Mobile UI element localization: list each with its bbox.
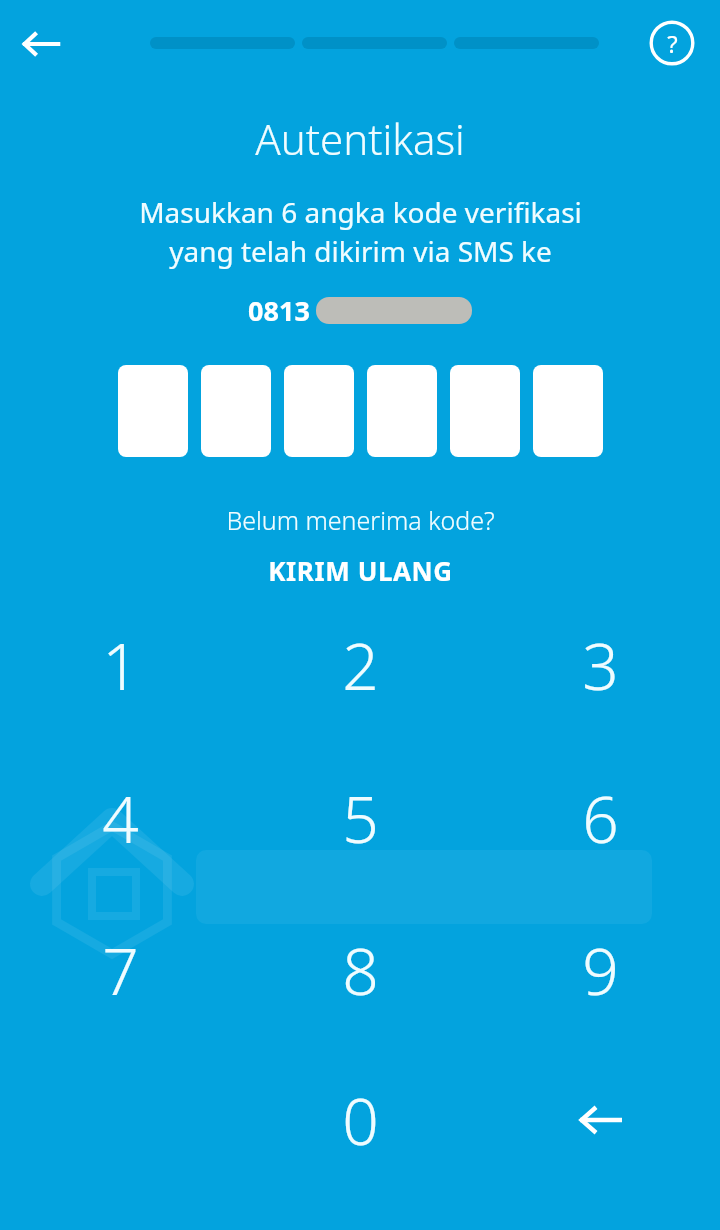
staticText: 4 xyxy=(102,775,139,862)
button[interactable]: Digit 4 xyxy=(367,365,437,457)
button[interactable]: 5 xyxy=(290,758,430,878)
staticText: Autentikasi xyxy=(255,110,465,167)
staticText: 7 xyxy=(102,927,139,1014)
button[interactable]: 1 xyxy=(50,605,190,725)
button[interactable]: KIRIM ULANG xyxy=(252,551,469,590)
button[interactable]: Back xyxy=(10,13,72,75)
button[interactable]: 9 xyxy=(530,910,670,1030)
staticText: 2 xyxy=(342,622,379,709)
button[interactable]: 2 xyxy=(290,605,430,725)
staticText: 3 xyxy=(582,622,619,709)
button[interactable]: Digit 1 xyxy=(118,365,188,457)
staticText: ? xyxy=(667,27,678,60)
staticText: KIRIM ULANG xyxy=(268,553,453,588)
staticText: 0813 xyxy=(248,292,310,329)
staticText: Belum menerima kode? xyxy=(226,503,495,537)
button[interactable]: Backspace xyxy=(540,1065,660,1175)
button[interactable]: Digit 6 xyxy=(533,365,603,457)
button[interactable]: Digit 5 xyxy=(450,365,520,457)
staticText: 6 xyxy=(582,775,619,862)
button[interactable]: 3 xyxy=(530,605,670,725)
button[interactable]: 0 xyxy=(290,1060,430,1180)
button[interactable]: Help xyxy=(642,13,702,73)
button[interactable]: 4 xyxy=(50,758,190,878)
staticText: 9 xyxy=(582,927,619,1014)
staticText: 8 xyxy=(342,927,379,1014)
button[interactable]: Digit 2 xyxy=(201,365,271,457)
button[interactable]: 7 xyxy=(50,910,190,1030)
staticText: 5 xyxy=(342,775,379,862)
staticText: Masukkan 6 angka kode verifikasi yang te… xyxy=(139,193,582,270)
staticText: 1 xyxy=(102,622,139,709)
button[interactable]: 8 xyxy=(290,910,430,1030)
button[interactable]: Digit 3 xyxy=(284,365,354,457)
staticText: 0 xyxy=(342,1077,379,1164)
button[interactable]: 6 xyxy=(530,758,670,878)
